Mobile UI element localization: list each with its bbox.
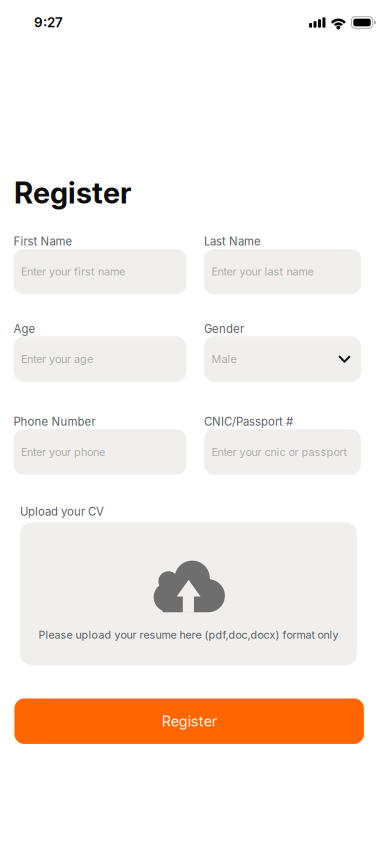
button[interactable]: Register	[14, 698, 364, 744]
staticText: Enter your cnic or passport	[211, 445, 347, 458]
staticText: Please upload your resume here (pdf,doc,…	[39, 628, 339, 641]
button[interactable]: Enter your phone	[13, 429, 186, 475]
button[interactable]: Enter your cnic or passport	[204, 429, 361, 475]
staticText: Register	[162, 712, 217, 730]
button[interactable]: Enter your last name	[204, 249, 361, 294]
button[interactable]: Please upload your resume here (pdf,doc,…	[20, 522, 357, 665]
staticText: Gender	[204, 322, 244, 336]
button[interactable]: Enter your first name	[13, 249, 186, 294]
staticText: Enter your phone	[21, 445, 105, 458]
staticText: Enter your age	[21, 352, 93, 366]
staticText: Enter your first name	[21, 265, 125, 278]
staticText: Last Name	[204, 234, 261, 248]
staticText: Phone Number	[13, 415, 95, 428]
staticText: First Name	[13, 234, 72, 248]
staticText: 9:27	[34, 14, 63, 30]
staticText: Enter your last name	[211, 265, 313, 278]
staticText: Upload your CV	[20, 505, 104, 518]
staticText: Age	[13, 322, 35, 336]
staticText: Register	[14, 175, 132, 210]
staticText: CNIC/Passport #	[204, 415, 293, 428]
button[interactable]: Enter your age	[13, 336, 186, 382]
button[interactable]: Male	[204, 336, 361, 382]
staticText: Male	[211, 352, 236, 366]
